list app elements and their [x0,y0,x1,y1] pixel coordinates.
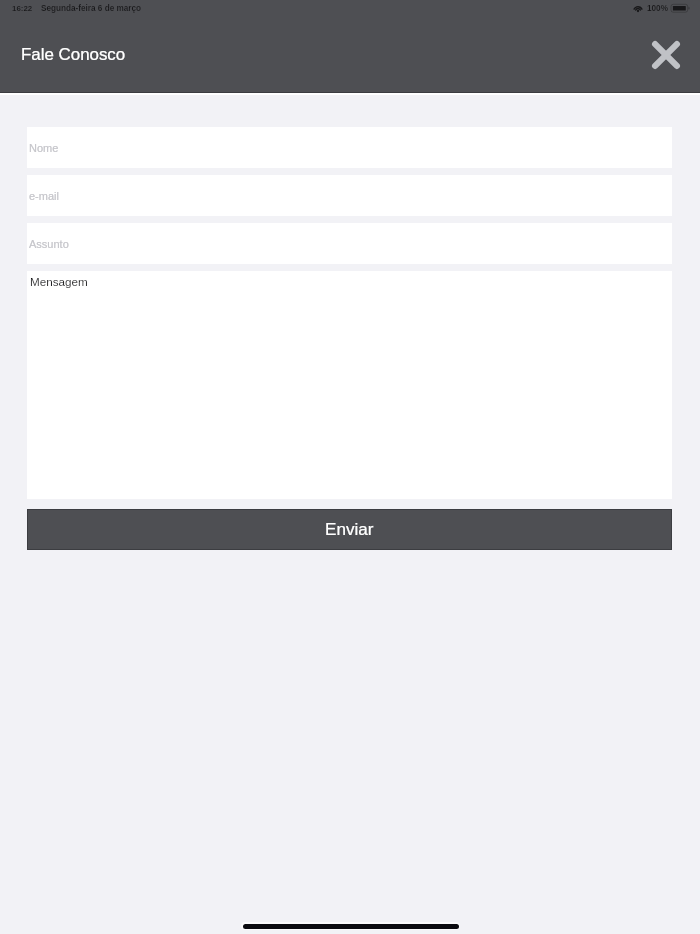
staticText: Nome [29,142,59,154]
staticText: Fale Conosco [21,45,126,64]
staticText: Enviar [325,520,374,539]
staticText: 100% [647,4,668,13]
staticText: Assunto [29,238,69,250]
button[interactable]: Enviar [27,509,672,550]
staticText: 16:22 [12,4,33,13]
button[interactable]: Fechar [644,33,688,77]
staticText: Segunda-feira 6 de março [41,4,142,13]
button[interactable]: Assunto [27,223,672,264]
button[interactable]: Mensagem [27,271,672,499]
staticText: Mensagem [30,275,88,288]
staticText: e-mail [29,190,59,202]
